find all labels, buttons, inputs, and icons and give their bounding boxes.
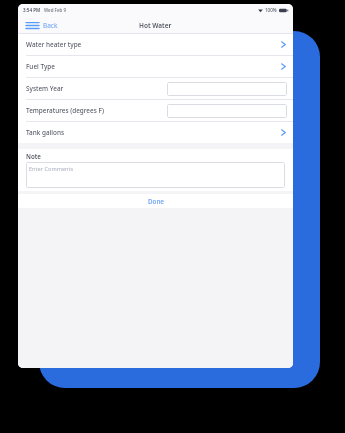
button[interactable]: Water heater type: [18, 34, 293, 55]
staticText: 100%: [265, 7, 277, 13]
staticText: Enter Comments: [29, 165, 74, 173]
staticText: System Year: [26, 84, 167, 93]
button[interactable]: Menu: [24, 19, 60, 32]
button[interactable]: Temperatures (degrees F): [18, 100, 293, 121]
staticText: Tank gallons: [26, 128, 65, 137]
staticText: 3:54 PM: [23, 7, 41, 13]
staticText: Wed Feb 9: [44, 7, 66, 13]
button[interactable]: Enter Comments: [26, 162, 285, 188]
staticText: Done: [148, 197, 164, 205]
staticText: Temperatures (degrees F): [26, 106, 167, 115]
button[interactable]: [167, 104, 287, 118]
staticText: Water heater type: [26, 40, 82, 49]
staticText: Note: [26, 152, 41, 160]
button[interactable]: Done: [18, 194, 293, 208]
staticText: Hot Water: [139, 21, 172, 30]
other: Menu: [26, 21, 39, 30]
button[interactable]: Tank gallons: [18, 122, 293, 143]
button[interactable]: [167, 82, 287, 96]
button[interactable]: System Year: [18, 78, 293, 99]
button[interactable]: Fuel Type: [18, 56, 293, 77]
staticText: Back: [43, 21, 58, 30]
staticText: Fuel Type: [26, 62, 55, 71]
